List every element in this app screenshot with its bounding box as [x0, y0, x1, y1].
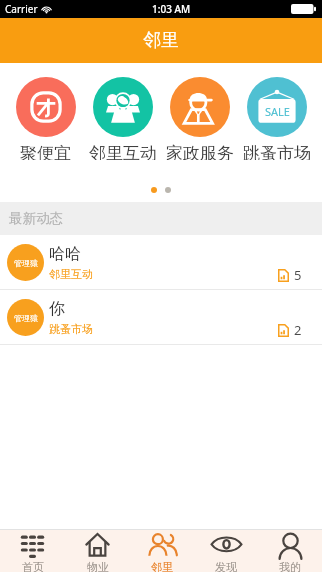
staticText: 哈哈 [49, 244, 81, 264]
staticText: 管理猿 [14, 258, 38, 268]
staticText: 最新动态 [9, 210, 63, 227]
staticText: 管理猿 [14, 313, 38, 323]
staticText: 物业 [87, 560, 109, 572]
button[interactable]: 首页 [0, 530, 65, 572]
button[interactable]: SALE [238, 77, 315, 160]
staticText: 5 [294, 266, 302, 284]
staticText: Carrier [5, 2, 38, 16]
staticText: 邻里互动 [49, 267, 93, 281]
staticText: 跳蚤市场 [49, 322, 93, 336]
button[interactable]: 邻里 [130, 530, 194, 572]
button[interactable]: 家政服务 [161, 77, 238, 160]
button[interactable]: 邻里互动 [84, 77, 161, 160]
button[interactable]: 聚便宜 [7, 77, 84, 160]
button[interactable]: 发现 [194, 530, 258, 572]
staticText: 你 [49, 299, 65, 319]
button[interactable]: 管理猿 [0, 290, 322, 344]
staticText: 我的 [279, 560, 301, 572]
button[interactable]: 管理猿 [0, 235, 322, 289]
staticText: 家政服务 [166, 143, 234, 160]
button[interactable]: 我的 [258, 530, 322, 572]
staticText: 1:03 AM [152, 2, 191, 16]
staticText: 邻里 [151, 560, 173, 572]
staticText: 跳蚤市场 [243, 143, 311, 160]
button[interactable]: 邻里 [0, 18, 322, 63]
staticText: 邻里 [143, 29, 179, 52]
staticText: 2 [294, 321, 302, 339]
staticText: 首页 [22, 560, 44, 572]
staticText: 邻里互动 [89, 143, 157, 160]
button[interactable]: 物业 [65, 530, 130, 572]
staticText: SALE [265, 104, 290, 119]
staticText: 发现 [215, 560, 237, 572]
staticText: 聚便宜 [20, 143, 71, 160]
